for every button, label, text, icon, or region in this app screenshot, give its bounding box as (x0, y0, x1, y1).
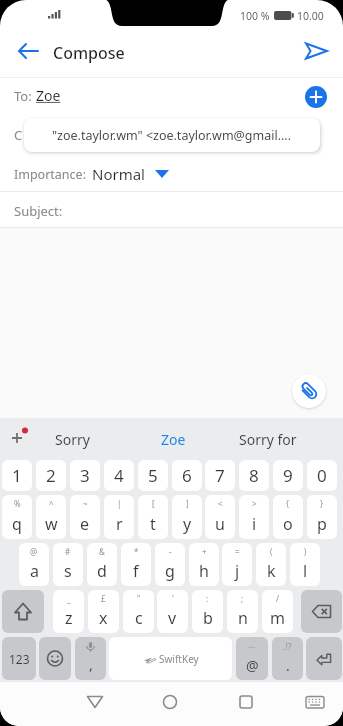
staticText: @ (246, 656, 259, 675)
staticText: 3 (80, 464, 90, 487)
button[interactable] (75, 688, 115, 718)
button[interactable]: @ (19, 543, 49, 586)
button[interactable]: } (307, 495, 337, 539)
button[interactable] (300, 36, 336, 66)
staticText: @ (30, 546, 38, 557)
button[interactable]: 0 (307, 460, 337, 491)
button[interactable]: - (155, 543, 185, 586)
button[interactable]: ; (227, 590, 258, 633)
button[interactable] (39, 637, 71, 680)
button[interactable]: = (222, 543, 252, 586)
button[interactable]: : (192, 590, 223, 633)
staticText: # (65, 546, 71, 557)
button[interactable]: 4 (104, 460, 134, 491)
button[interactable]: 7 (205, 460, 235, 491)
button[interactable]: 8 (239, 460, 269, 491)
button[interactable] (150, 688, 190, 718)
button[interactable]: 5 (138, 460, 168, 491)
button[interactable]: 6 (172, 460, 202, 491)
button[interactable]: 1 (2, 460, 32, 491)
staticText: " (137, 593, 141, 604)
button[interactable]: ^ (36, 495, 66, 539)
button[interactable]: SwiftKey (109, 637, 232, 680)
button[interactable]: * (121, 543, 151, 586)
button[interactable]: Subject: (0, 192, 343, 227)
button[interactable]: & (87, 543, 117, 586)
button[interactable]: | (104, 495, 134, 539)
staticText: SwiftKey (159, 652, 199, 666)
staticText: Compose (53, 42, 125, 64)
button[interactable] (305, 86, 327, 108)
staticText: h (199, 560, 209, 582)
button[interactable]: ) (290, 543, 320, 586)
button[interactable]: _ (53, 590, 84, 633)
staticText: Subject: (14, 202, 63, 220)
staticText: & (99, 546, 105, 557)
staticText: 10.00 (297, 9, 324, 23)
button[interactable]: ... (236, 637, 268, 680)
button[interactable]: , (75, 637, 106, 680)
button[interactable] (306, 637, 342, 680)
button[interactable]: < (205, 495, 235, 539)
staticText: 0 (317, 464, 327, 487)
staticText: _ (67, 593, 71, 604)
staticText: w (45, 513, 58, 535)
button[interactable]: 2 (36, 460, 66, 491)
button[interactable]: [ (138, 495, 168, 539)
button[interactable]: Zoe (130, 418, 216, 460)
button[interactable] (0, 228, 343, 418)
button[interactable]: Sorry for (216, 418, 320, 460)
button[interactable] (295, 688, 335, 718)
button[interactable]: £ (88, 590, 119, 633)
button[interactable]: { (273, 495, 303, 539)
button[interactable]: To: (0, 78, 343, 114)
button[interactable]: 9 (273, 460, 303, 491)
staticText: C (14, 126, 23, 144)
staticText: .!? (283, 640, 292, 652)
staticText: ^ (49, 498, 54, 509)
staticText: { (286, 498, 290, 509)
button[interactable]: ( (256, 543, 286, 586)
staticText: 100 % (240, 9, 270, 23)
button[interactable]: + (189, 543, 219, 586)
button[interactable] (301, 590, 342, 633)
staticText: ~ (83, 498, 88, 509)
staticText: Importance: (14, 166, 86, 183)
staticText: c (135, 607, 143, 629)
button[interactable]: " (123, 590, 154, 633)
staticText: 6 (182, 464, 192, 487)
staticText: / (276, 593, 279, 604)
staticText: a (30, 560, 39, 582)
staticText: Zoe (161, 430, 186, 449)
button[interactable] (226, 688, 266, 718)
staticText: 123 (9, 651, 30, 667)
button[interactable]: ] (172, 495, 202, 539)
button[interactable]: Importance: (0, 155, 343, 191)
staticText: ( (270, 546, 273, 557)
staticText: l (303, 560, 308, 582)
staticText: f (133, 560, 139, 582)
button[interactable]: % (2, 495, 32, 539)
staticText: 5 (148, 464, 158, 487)
button[interactable]: 3 (70, 460, 100, 491)
staticText: x (99, 607, 108, 629)
button[interactable]: ~ (70, 495, 100, 539)
button[interactable]: > (239, 495, 269, 539)
staticText: q (12, 513, 22, 535)
staticText: s (64, 560, 72, 582)
button[interactable]: Sorry (26, 418, 118, 460)
button[interactable]: "zoe.taylor.wm" <zoe.taylor.wm@gmail.... (24, 118, 320, 152)
staticText: ) (304, 546, 307, 557)
staticText: To: (14, 87, 32, 105)
button[interactable] (2, 590, 44, 633)
button[interactable]: ' (157, 590, 188, 633)
button[interactable]: # (53, 543, 83, 586)
button[interactable]: 123 (2, 637, 36, 680)
button[interactable] (8, 36, 46, 66)
button[interactable]: / (262, 590, 293, 633)
staticText: - (169, 546, 172, 557)
staticText: 9 (283, 464, 293, 487)
staticText: "zoe.taylor.wm" <zoe.taylor.wm@gmail.... (52, 127, 292, 144)
button[interactable]: .!? (272, 637, 303, 680)
button[interactable] (292, 374, 326, 408)
